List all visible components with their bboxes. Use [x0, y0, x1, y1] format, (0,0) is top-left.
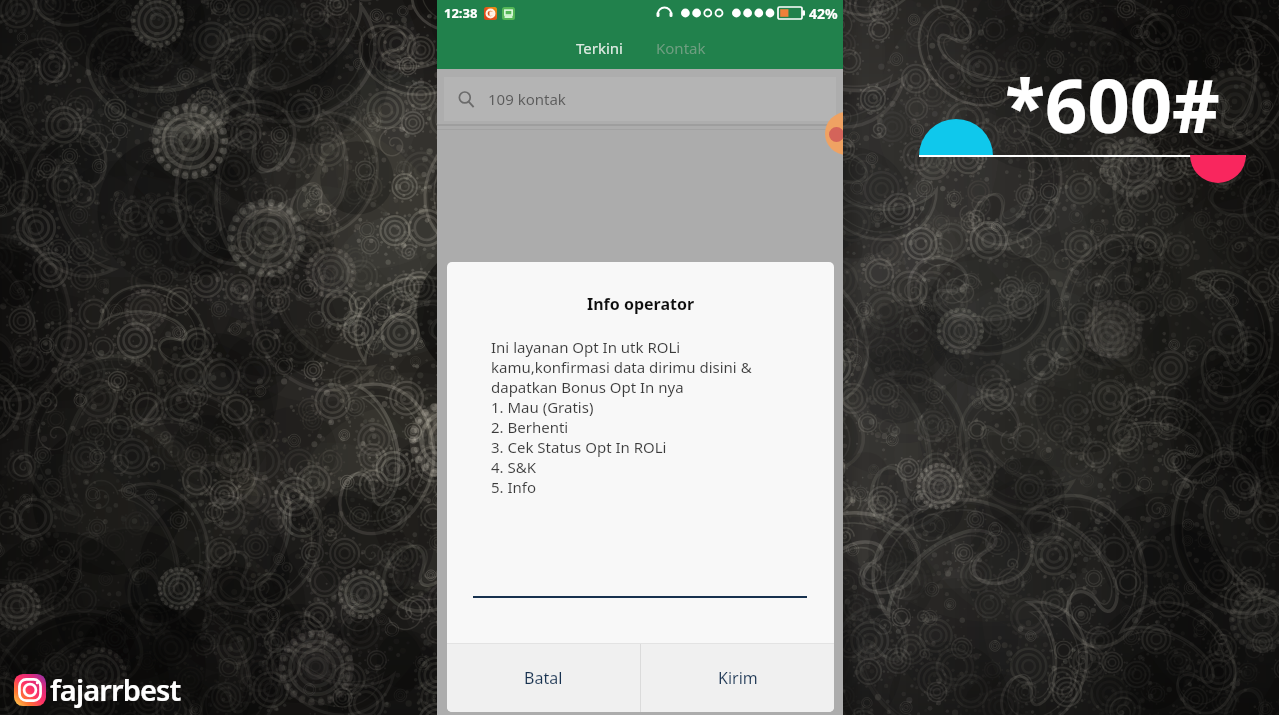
staticText: 42%	[809, 4, 838, 23]
staticText: 5. Info	[491, 477, 537, 497]
staticText: Info operator	[447, 293, 834, 315]
staticText: dapatkan Bonus Opt In nya	[491, 377, 684, 397]
staticText: fajarrbest	[50, 670, 181, 709]
staticText: Kontak	[656, 38, 706, 58]
staticText: Terkini	[576, 38, 623, 58]
staticText: *600#	[1005, 54, 1220, 155]
button[interactable]: 109 kontak	[444, 77, 836, 121]
button[interactable]: Batal	[447, 644, 640, 712]
staticText: 1. Mau (Gratis)	[491, 397, 594, 417]
staticText: Kirim	[718, 667, 758, 689]
staticText: 2. Berhenti	[491, 417, 569, 437]
staticText: Batal	[524, 667, 563, 689]
button[interactable]: Contact	[825, 112, 843, 155]
button[interactable]: Kirim	[641, 644, 834, 712]
staticText: 12:38	[444, 4, 478, 22]
staticText: Ini layanan Opt In utk ROLi	[491, 337, 681, 357]
button[interactable]: Terkini	[558, 26, 640, 69]
staticText: kamu,konfirmasi data dirimu disini &	[491, 357, 752, 377]
staticText: 4. S&K	[491, 457, 537, 477]
staticText: 109 kontak	[488, 89, 566, 109]
staticText: 3. Cek Status Opt In ROLi	[491, 437, 667, 457]
button[interactable]: Kontak	[640, 26, 722, 69]
